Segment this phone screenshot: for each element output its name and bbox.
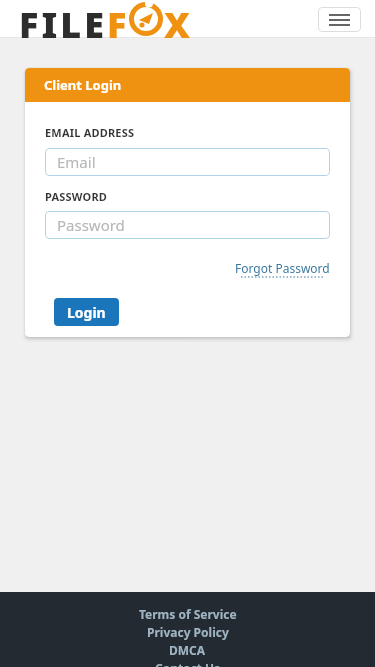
staticText: Password (57, 215, 125, 235)
staticText: Forgot Password (235, 260, 330, 276)
button[interactable]: Privacy Policy (147, 624, 229, 640)
button[interactable]: Password (45, 211, 330, 239)
staticText: F (107, 0, 127, 38)
button[interactable]: Email (45, 148, 330, 176)
staticText: EMAIL ADDRESS (45, 125, 135, 139)
button[interactable] (318, 7, 361, 32)
button[interactable]: Forgot Password (235, 260, 330, 278)
staticText: Login (67, 303, 106, 322)
staticText: FILE (19, 0, 107, 38)
button[interactable]: Terms of Service (139, 606, 237, 622)
button[interactable]: DMCA (169, 642, 206, 658)
staticText: X (164, 0, 191, 38)
staticText: Email (57, 152, 96, 172)
staticText: PASSWORD (45, 189, 108, 203)
button[interactable]: Contact Us (155, 660, 221, 667)
button[interactable]: Login (54, 298, 119, 326)
staticText: Client Login (44, 76, 122, 94)
